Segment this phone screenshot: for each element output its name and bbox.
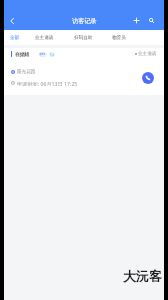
staticText: 物管员	[112, 35, 126, 41]
button[interactable]: 全部	[3, 30, 26, 45]
button[interactable]: Call	[142, 72, 154, 84]
button[interactable]: 物管员	[105, 30, 132, 45]
button[interactable]: Back	[6, 15, 17, 26]
staticText: 在娟姐	[15, 51, 30, 57]
staticText: 大沅客	[123, 268, 162, 284]
button[interactable]: 扫码自助	[68, 30, 99, 45]
staticText: 业主邀请	[35, 35, 54, 41]
staticText: 阳光花园	[17, 69, 36, 75]
staticText: 业主邀请	[138, 51, 157, 57]
staticText: 未到访	[39, 52, 47, 57]
button[interactable]: Search	[145, 14, 157, 26]
staticText: 1人	[50, 53, 55, 57]
button[interactable]: 业主邀请	[29, 30, 60, 45]
button[interactable]: 在娟姐	[4, 48, 164, 95]
staticText: 访客记录	[72, 17, 97, 25]
button[interactable]: Add	[130, 14, 142, 26]
staticText: 申请时间: 06月13日 17:25	[17, 80, 78, 86]
staticText: 扫码自助	[74, 35, 93, 41]
staticText: 全部	[10, 35, 20, 41]
